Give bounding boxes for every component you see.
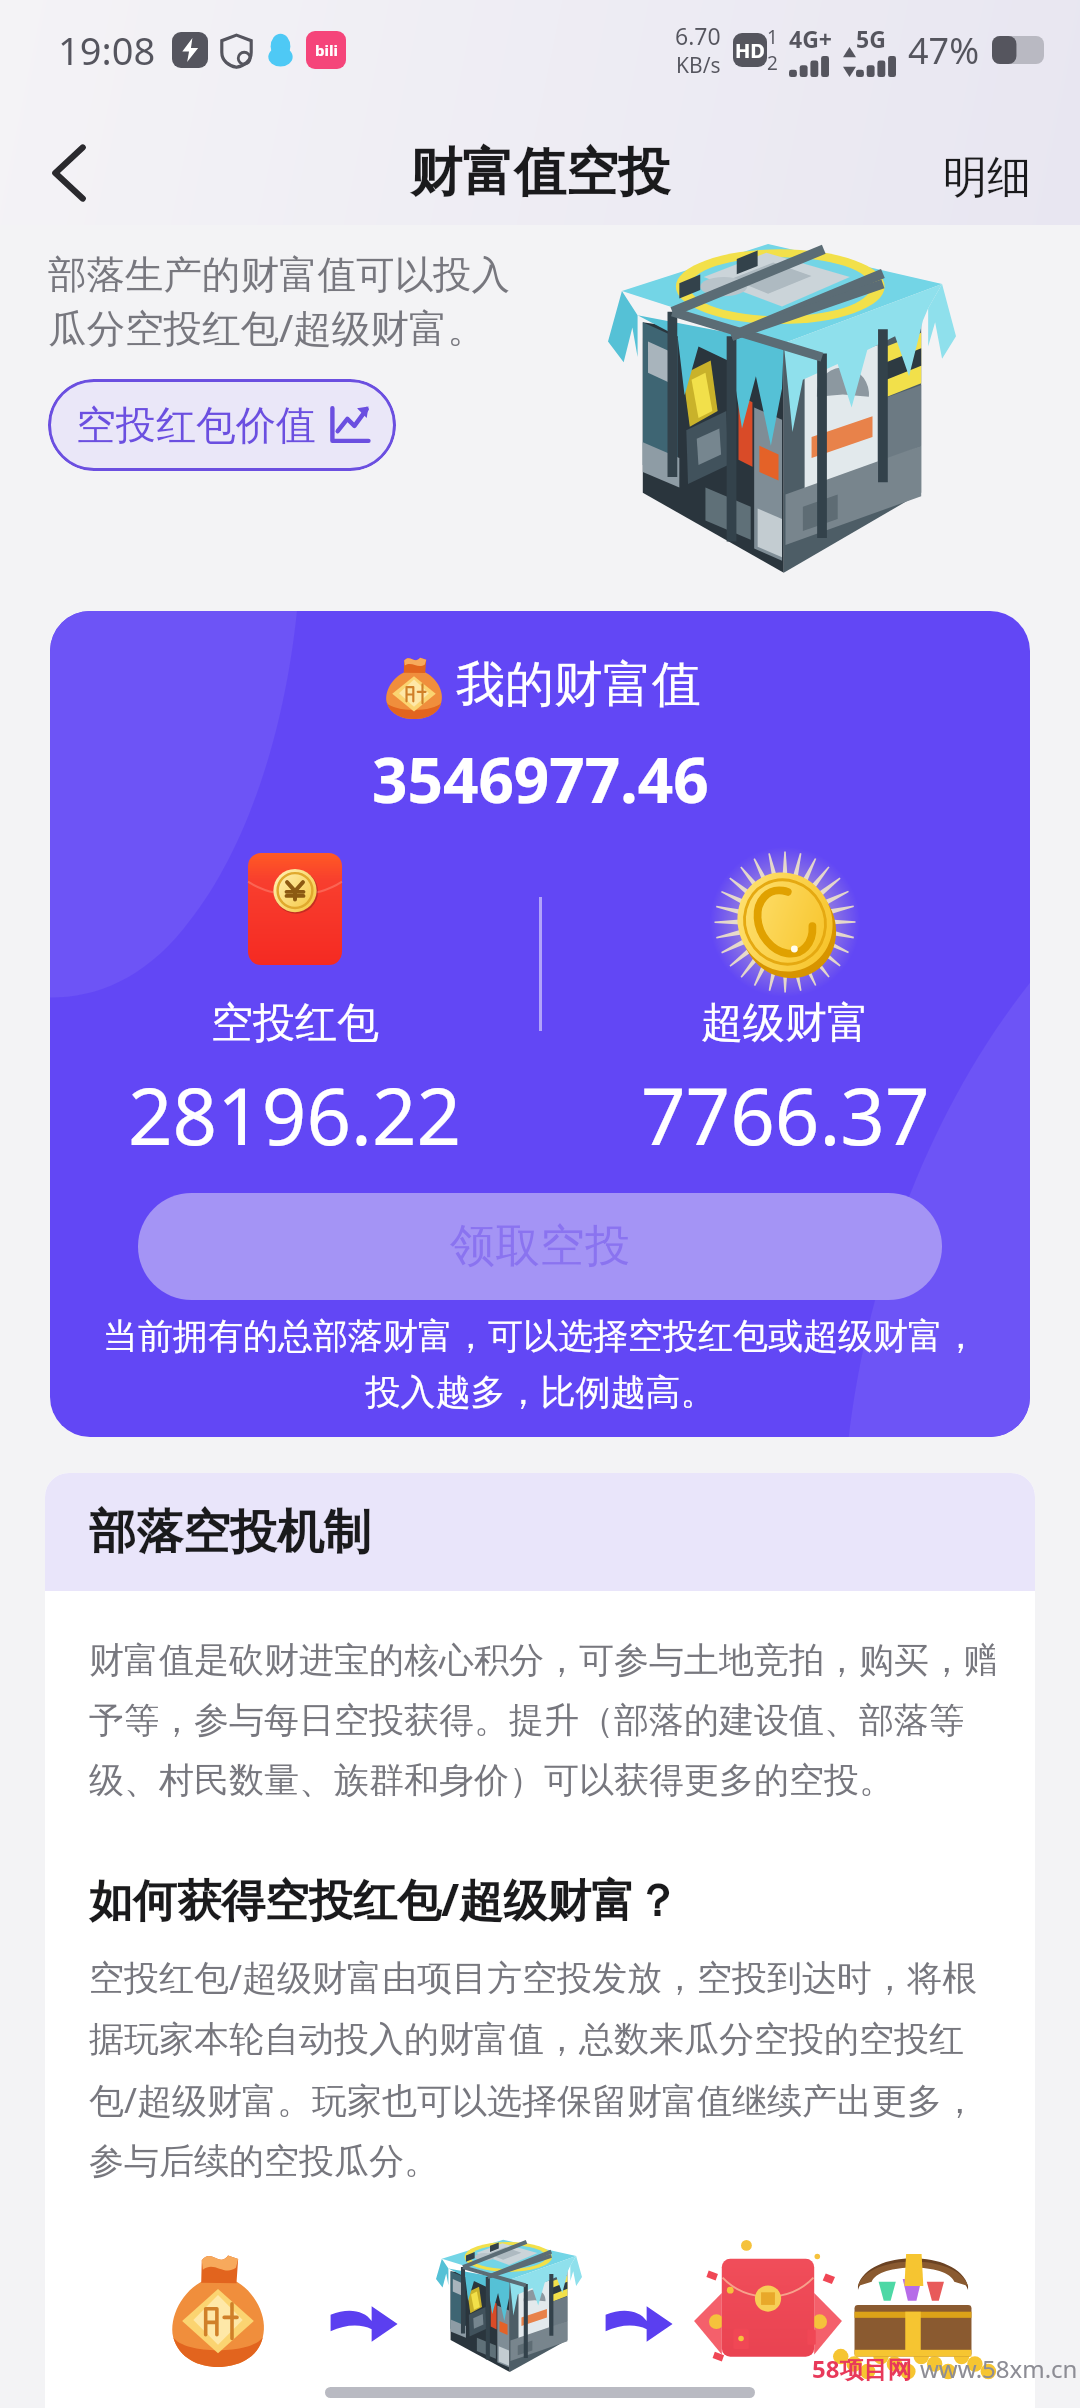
staticText: 明细: [943, 150, 1031, 205]
staticText: 2: [767, 50, 778, 76]
staticText: 如何获得空投红包/超级财富？: [89, 1869, 680, 1929]
staticText: 超级财富: [701, 997, 869, 1050]
staticText: 领取空投: [450, 1218, 630, 1275]
staticText: 3546977.46: [372, 737, 709, 821]
staticText: HD: [735, 37, 765, 64]
staticText: 部落生产的财富值可以投入 瓜分空投红包/超级财富。: [48, 251, 510, 353]
staticText: 58项目网: [812, 2352, 912, 2385]
button[interactable]: 领取空投: [138, 1193, 942, 1300]
button[interactable]: 明细: [931, 142, 1043, 213]
staticText: 6.70: [675, 20, 721, 51]
staticText: 28196.22: [128, 1062, 462, 1168]
staticText: 空投红包/超级财富由项目方空投发放，空投到达时，将根 据玩家本轮自动投入的财富值…: [89, 1953, 978, 2183]
staticText: www.58xm.cn: [920, 2352, 1078, 2385]
staticText: KB/s: [676, 51, 721, 80]
staticText: 财富值是砍财进宝的核心积分，可参与土地竞拍，购买，赠 予等，参与每日空投获得。提…: [89, 1638, 995, 1802]
button[interactable]: 空投红包价值: [48, 379, 396, 471]
button[interactable]: Back: [21, 125, 117, 221]
staticText: 47%: [908, 26, 980, 75]
staticText: bili: [315, 40, 338, 60]
staticText: 空投红包: [211, 997, 379, 1050]
staticText: 7766.37: [641, 1062, 930, 1168]
staticText: 财富值空投: [410, 140, 670, 206]
staticText: 空投红包价值: [76, 400, 316, 450]
staticText: 部落空投机制: [89, 1503, 371, 1562]
staticText: 4G+: [789, 23, 832, 54]
staticText: 19:08: [58, 24, 156, 76]
staticText: 1: [767, 24, 778, 50]
staticText: 当前拥有的总部落财富，可以选择空投红包或超级财富， 投入越多，比例越高。: [103, 1314, 978, 1414]
staticText: 5G: [856, 23, 886, 54]
staticText: 我的财富值: [456, 654, 701, 716]
